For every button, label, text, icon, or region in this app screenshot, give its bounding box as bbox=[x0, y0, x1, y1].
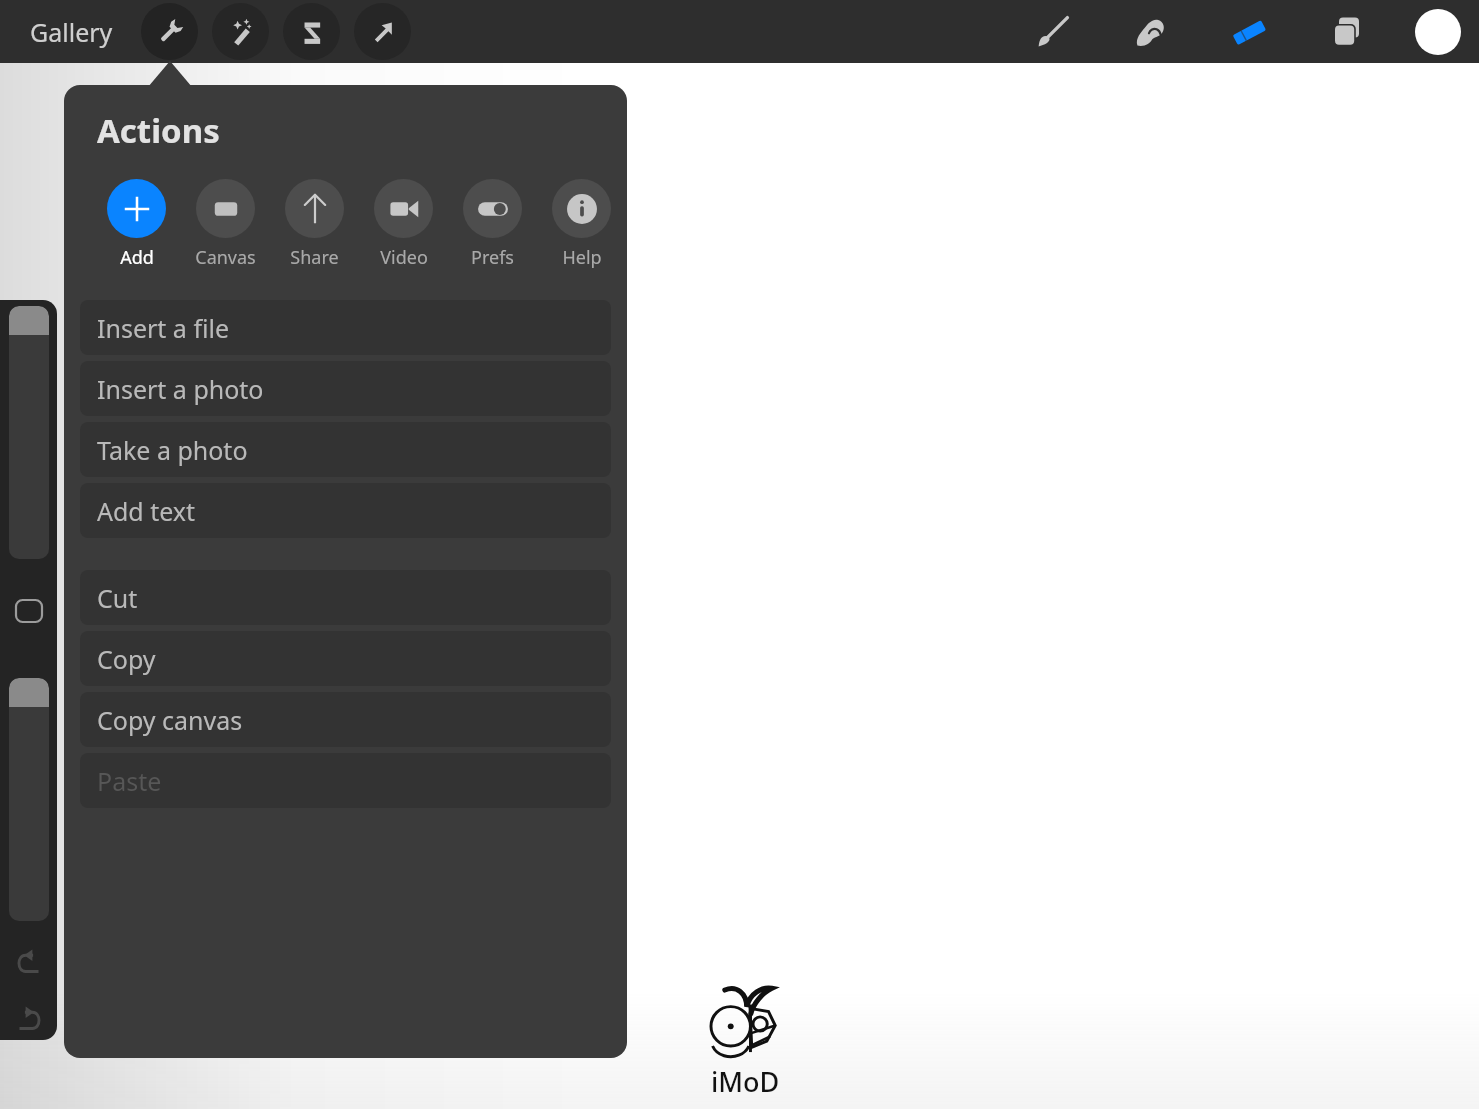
button[interactable]: Selection bbox=[283, 3, 340, 60]
button[interactable]: Video bbox=[359, 177, 448, 272]
button[interactable]: Copy bbox=[80, 631, 611, 686]
staticText: Actions bbox=[97, 108, 220, 153]
staticText: Prefs bbox=[471, 245, 514, 270]
button[interactable]: Redo bbox=[12, 1002, 46, 1036]
staticText: Copy bbox=[97, 642, 156, 676]
staticText: Paste bbox=[97, 764, 162, 798]
staticText: Help bbox=[562, 245, 602, 270]
staticText: Canvas bbox=[195, 245, 256, 270]
staticText: Video bbox=[380, 245, 428, 270]
staticText: Add text bbox=[97, 494, 196, 528]
button[interactable]: Add text bbox=[80, 483, 611, 538]
button[interactable]: Actions bbox=[141, 3, 198, 60]
button[interactable]: Copy canvas bbox=[80, 692, 611, 747]
button[interactable]: Adjustments bbox=[212, 3, 269, 60]
button[interactable]: Modify bbox=[16, 600, 42, 622]
staticText: Copy canvas bbox=[97, 703, 243, 737]
staticText: Add bbox=[120, 245, 154, 270]
button[interactable]: Take a photo bbox=[80, 422, 611, 477]
staticText: Take a photo bbox=[97, 433, 248, 467]
button[interactable]: Smudge bbox=[1123, 4, 1179, 60]
button[interactable]: Slider bbox=[9, 306, 49, 559]
button[interactable]: Help bbox=[537, 177, 626, 272]
button[interactable]: Erase bbox=[1221, 4, 1277, 60]
staticText: Share bbox=[290, 245, 339, 270]
staticText: Insert a photo bbox=[97, 372, 264, 406]
button[interactable]: Cut bbox=[80, 570, 611, 625]
button[interactable]: Add bbox=[92, 177, 181, 272]
staticText: Gallery bbox=[30, 15, 113, 49]
button[interactable]: Colour bbox=[1415, 9, 1461, 55]
button[interactable]: Gallery bbox=[22, 9, 121, 55]
button[interactable]: Paste bbox=[80, 753, 611, 808]
button[interactable]: Layers bbox=[1319, 4, 1375, 60]
button[interactable]: Insert a file bbox=[80, 300, 611, 355]
button[interactable]: Slider bbox=[9, 678, 49, 921]
staticText: Insert a file bbox=[97, 311, 229, 345]
button[interactable]: Paint bbox=[1025, 4, 1081, 60]
button[interactable]: Insert a photo bbox=[80, 361, 611, 416]
staticText: Cut bbox=[97, 581, 138, 615]
button[interactable]: Canvas bbox=[181, 177, 270, 272]
button[interactable]: Share bbox=[270, 177, 359, 272]
button[interactable]: Prefs bbox=[448, 177, 537, 272]
staticText: iMoD bbox=[711, 1063, 780, 1100]
button[interactable]: Undo bbox=[12, 945, 46, 979]
button[interactable]: Transform bbox=[354, 3, 411, 60]
